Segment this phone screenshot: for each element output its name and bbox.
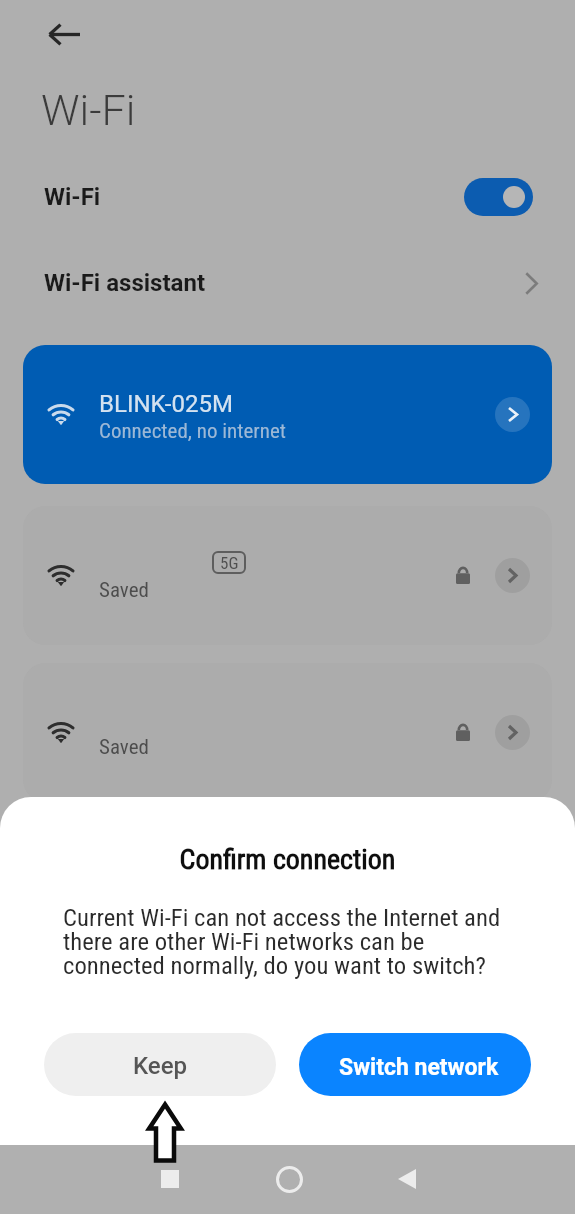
staticText: Saved: [99, 578, 149, 603]
staticText: Wi-Fi: [44, 183, 101, 211]
staticText: BLINK-025M: [99, 390, 233, 418]
staticText: Wi-Fi assistant: [44, 269, 205, 297]
button[interactable]: Back: [383, 1155, 431, 1203]
button[interactable]: Back: [38, 8, 90, 60]
button[interactable]: Switch network: [299, 1033, 531, 1096]
staticText: Switch network: [339, 1054, 499, 1081]
button[interactable]: Home: [265, 1155, 313, 1203]
button[interactable]: Keep: [44, 1033, 276, 1096]
staticText: Saved: [99, 735, 149, 760]
staticText: Wi-Fi: [41, 85, 136, 135]
staticText: Current Wi-Fi can not access the Interne…: [63, 903, 520, 980]
staticText: 5G: [220, 553, 239, 573]
staticText: Connected, no internet: [99, 419, 286, 444]
staticText: Keep: [133, 1052, 188, 1080]
button[interactable]: Recent apps: [146, 1155, 194, 1203]
button[interactable]: BLINK-025M: [23, 345, 552, 484]
button[interactable]: Saved: [23, 663, 552, 802]
button[interactable]: Wi-Fi: [0, 164, 575, 230]
button[interactable]: Saved: [23, 506, 552, 645]
button[interactable]: Wi-Fi assistant: [0, 250, 575, 316]
staticText: Confirm connection: [0, 843, 575, 876]
